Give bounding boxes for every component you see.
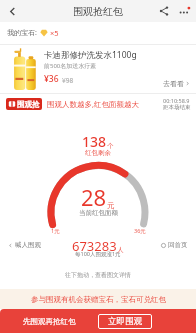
button[interactable]: 喊人围观 (8, 241, 41, 249)
staticText: 673283 (72, 237, 117, 255)
staticText: 28 (81, 182, 107, 212)
button[interactable]: 去看看 (163, 79, 190, 88)
staticText: 红包剩余 (85, 149, 111, 157)
staticText: 我的宝石: (7, 28, 37, 38)
staticText: 去看看 (163, 79, 184, 88)
staticText: 个 (107, 142, 114, 150)
staticText: 138 (82, 132, 107, 151)
staticText: 36元 (134, 227, 146, 235)
staticText: 参与围观有机会获赠宝石，宝石可兑红包 (31, 295, 166, 304)
staticText: 喊人围观 (15, 241, 41, 249)
button[interactable]: 卡迪那修护洗发水1100g (0, 45, 196, 93)
staticText: 人 (117, 246, 124, 254)
staticText: ¥36 (44, 73, 59, 85)
button[interactable]: Back (3, 2, 21, 20)
staticText: 围观人数越多,红包面额越大 (47, 99, 140, 109)
button[interactable]: 回首页 (161, 241, 188, 249)
staticText: 前500名加送水疗素 (44, 62, 97, 70)
staticText: 每100人围观涨1元 (75, 250, 121, 258)
staticText: 00:10:58.9 (163, 97, 190, 104)
staticText: 1元 (51, 227, 60, 235)
staticText: ¥98 (62, 76, 74, 85)
button[interactable]: 先围观再抢红包 (0, 309, 98, 333)
button[interactable]: Share (156, 3, 172, 19)
staticText: 先围观再抢红包 (23, 317, 76, 326)
staticText: 围观抢红包 (73, 5, 123, 18)
staticText: 距本场结束 (163, 104, 191, 111)
staticText: 立即围观 (108, 316, 142, 327)
button[interactable]: 立即围观 (98, 314, 152, 329)
staticText: 回首页 (168, 241, 188, 249)
staticText: 往下拖动，查看图文详情 (65, 271, 131, 279)
staticText: 围观抢 (17, 100, 40, 109)
button[interactable]: More options (176, 3, 192, 19)
staticText: ×5 (50, 28, 59, 38)
staticText: 元 (107, 201, 115, 210)
staticText: 当前红包面额 (79, 209, 118, 217)
staticText: 卡迪那修护洗发水1100g (44, 49, 137, 61)
